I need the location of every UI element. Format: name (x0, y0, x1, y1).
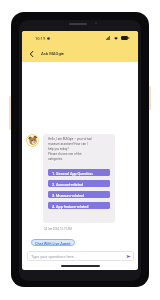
staticText: 3. Museum-related (52, 193, 84, 197)
button[interactable]: 4. App feature-related (48, 202, 110, 209)
staticText: 1. General App Question (52, 171, 93, 175)
button[interactable]: Type your questions here... (27, 251, 134, 261)
staticText: Type your questions here... (31, 254, 77, 259)
staticText: Ask MAGgie (41, 51, 65, 56)
staticText: Chat With Live Agent (35, 241, 71, 245)
staticText: 4. App feature-related (52, 204, 89, 208)
button[interactable]: Chat With Live Agent (31, 239, 75, 246)
staticText: 2. Account-related (52, 182, 83, 186)
button[interactable]: Back (27, 49, 36, 58)
button[interactable]: 2. Account-related (48, 180, 110, 187)
staticText: Hello, I am MAGgie – your virtual museum… (48, 137, 93, 161)
staticText: 24 Jan 2024, 10:19 AM (44, 227, 72, 230)
button[interactable]: 1. General App Question (48, 169, 110, 176)
button[interactable]: Send (125, 253, 131, 259)
staticText: 10:19 (35, 36, 46, 41)
button[interactable]: 3. Museum-related (48, 191, 110, 198)
